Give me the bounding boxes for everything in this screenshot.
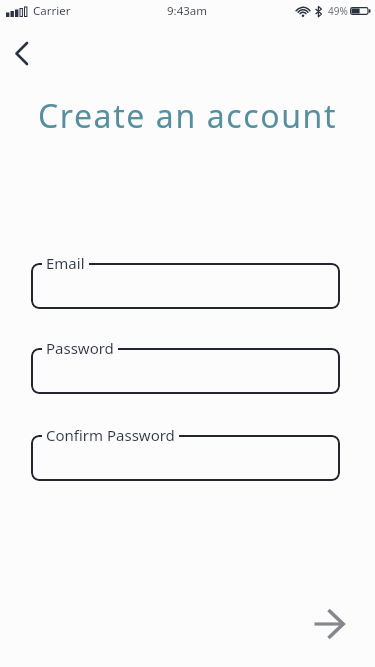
- button[interactable]: [4, 36, 38, 70]
- staticText: Confirm Password: [46, 425, 175, 445]
- staticText: Password: [46, 338, 114, 358]
- staticText: 9:43am: [167, 3, 208, 19]
- staticText: Carrier: [33, 3, 71, 19]
- staticText: Create an account: [0, 94, 375, 138]
- button[interactable]: [31, 435, 340, 481]
- button[interactable]: [31, 263, 340, 309]
- button[interactable]: [31, 348, 340, 394]
- staticText: Email: [46, 253, 85, 273]
- staticText: 49%: [328, 4, 348, 18]
- button[interactable]: [308, 604, 348, 644]
